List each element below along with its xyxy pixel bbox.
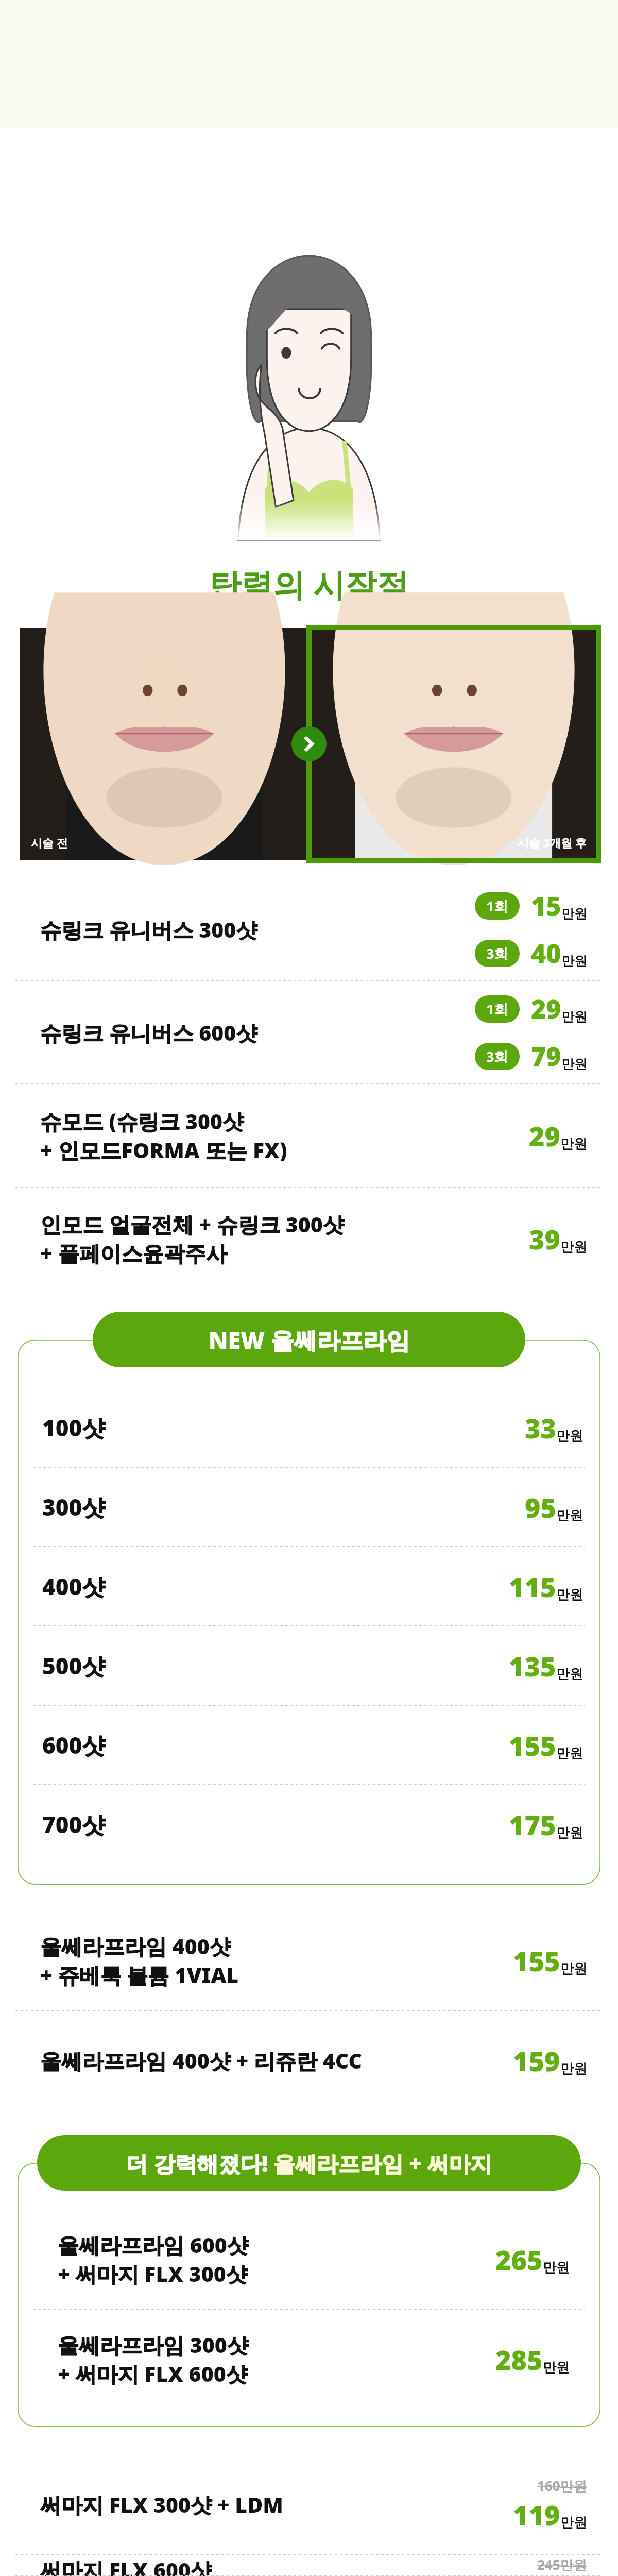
staticText: 1회: [486, 999, 508, 1019]
staticText: 만원: [561, 1056, 587, 1072]
staticText: 슈링크 유니버스 600샷: [40, 1018, 257, 1047]
button[interactable]: 울쎄라프라임 400샷: [0, 1911, 618, 2009]
button[interactable]: 슈모드 (슈링크 300샷: [0, 1085, 618, 1186]
staticText: 3회: [486, 944, 508, 963]
staticText: 만원: [556, 1507, 583, 1524]
staticText: 119: [513, 2496, 560, 2533]
staticText: 285: [495, 2341, 543, 2378]
staticText: 79: [531, 1039, 561, 1074]
button[interactable]: NEW 울쎄라프라임: [93, 1312, 525, 1367]
staticText: 만원: [556, 1586, 583, 1603]
staticText: + 풀페이스윤곽주사: [40, 1239, 227, 1267]
staticText: 울쎄라프라임 600샷: [58, 2230, 248, 2259]
staticText: 만원: [560, 1136, 587, 1153]
button[interactable]: 슈링크 유니버스 300샷: [0, 879, 618, 980]
staticText: + 인모드FORMA 또는 FX): [40, 1136, 287, 1164]
button[interactable]: 700샷: [18, 1786, 600, 1863]
button[interactable]: 600샷: [18, 1706, 600, 1784]
button[interactable]: 슈링크 유니버스 600샷: [0, 982, 618, 1083]
button[interactable]: 써마지 FLX 300샷 + LDM: [0, 2455, 618, 2553]
staticText: 탄력의 시작점: [209, 562, 409, 606]
staticText: 만원: [561, 906, 587, 922]
staticText: 700샷: [42, 1809, 105, 1840]
staticText: 155: [509, 1727, 556, 1764]
staticText: 만원: [560, 1239, 587, 1256]
staticText: 40: [531, 936, 561, 971]
button[interactable]: 써마지 FLX 600샷: [0, 2555, 618, 2576]
staticText: 시술 전: [31, 835, 68, 850]
staticText: 만원: [543, 2359, 570, 2376]
staticText: 135: [509, 1648, 556, 1684]
staticText: 만원: [561, 953, 587, 969]
staticText: 만원: [556, 1428, 583, 1445]
button[interactable]: 울쎄라프라임 300샷: [18, 2310, 600, 2408]
staticText: 155: [513, 1942, 560, 1979]
staticText: 만원: [556, 1745, 583, 1762]
button[interactable]: 더 강력해졌다! 울쎄라프라임 + 써마지: [37, 2135, 581, 2191]
button[interactable]: 인모드 얼굴전체 + 슈링크 300샷: [0, 1188, 618, 1289]
staticText: + 쥬베룩 볼륨 1VIAL: [40, 1960, 239, 1989]
staticText: NEW 울쎄라프라임: [209, 1324, 410, 1355]
button[interactable]: 100샷: [18, 1389, 600, 1466]
staticText: 500샷: [42, 1650, 105, 1681]
staticText: 39: [529, 1221, 560, 1257]
staticText: 만원: [556, 1666, 583, 1683]
staticText: 시술 3개월 후: [518, 835, 587, 850]
staticText: 만원: [556, 1824, 583, 1841]
staticText: 울쎄라프라임 300샷: [58, 2330, 248, 2359]
staticText: 슈모드 (슈링크 300샷: [40, 1107, 244, 1136]
staticText: 만원: [560, 2514, 587, 2531]
staticText: 400샷: [42, 1571, 105, 1602]
staticText: 3회: [486, 1047, 508, 1066]
staticText: 245만원: [537, 2555, 587, 2574]
button[interactable]: 500샷: [18, 1627, 600, 1704]
staticText: 29: [529, 1117, 560, 1154]
button[interactable]: 울쎄라프라임 600샷: [18, 2210, 600, 2308]
staticText: 만원: [560, 2060, 587, 2077]
staticText: + 써마지 FLX 300샷: [58, 2259, 247, 2288]
staticText: 175: [509, 1806, 556, 1843]
button[interactable]: 400샷: [18, 1548, 600, 1625]
staticText: 인모드 얼굴전체 + 슈링크 300샷: [40, 1210, 344, 1239]
button[interactable]: 다음: [291, 726, 327, 761]
staticText: 만원: [560, 1960, 587, 1977]
staticText: 슈링크 유니버스 300샷: [40, 915, 257, 944]
staticText: + 써마지 FLX 600샷: [58, 2359, 247, 2388]
staticText: 울쎄라프라임 400샷: [40, 1931, 231, 1960]
staticText: 써마지 FLX 300샷 + LDM: [40, 2490, 283, 2519]
staticText: 300샷: [42, 1492, 105, 1522]
staticText: 만원: [543, 2259, 570, 2276]
staticText: 115: [509, 1568, 556, 1605]
staticText: 울쎄라프라임 400샷 + 리쥬란 4CC: [40, 2046, 363, 2075]
button[interactable]: 300샷: [18, 1468, 600, 1546]
staticText: 33: [525, 1410, 556, 1446]
staticText: 만원: [561, 1009, 587, 1025]
staticText: 160만원: [537, 2477, 587, 2495]
staticText: 더 강력해졌다! 울쎄라프라임 + 써마지: [126, 2148, 492, 2178]
button[interactable]: 울쎄라프라임 400샷 + 리쥬란 4CC: [0, 2011, 618, 2109]
staticText: 159: [513, 2042, 560, 2079]
staticText: 써마지 FLX 600샷: [40, 2555, 212, 2576]
staticText: 600샷: [42, 1730, 105, 1760]
staticText: 29: [531, 991, 561, 1026]
staticText: 1회: [486, 896, 508, 916]
staticText: 195: [513, 2575, 560, 2576]
staticText: 95: [525, 1489, 556, 1526]
staticText: 100샷: [42, 1412, 105, 1443]
staticText: 15: [531, 888, 561, 923]
staticText: 265: [495, 2241, 543, 2278]
